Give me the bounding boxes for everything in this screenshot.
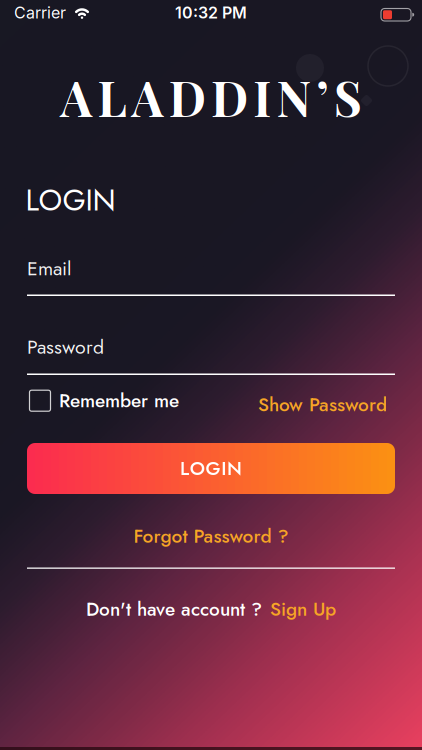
staticText: ’ bbox=[317, 65, 329, 129]
button[interactable]: LOGIN bbox=[27, 443, 395, 494]
staticText: L bbox=[97, 65, 126, 129]
button[interactable]: Remember me bbox=[29, 387, 179, 414]
staticText: Show Password bbox=[258, 391, 387, 418]
staticText: Remember me bbox=[59, 387, 179, 414]
staticText: Carrier bbox=[14, 3, 66, 22]
staticText: Email bbox=[27, 254, 71, 283]
staticText: LOGIN bbox=[25, 178, 115, 222]
staticText: Sign Up bbox=[270, 595, 336, 623]
button[interactable]: Sign Up bbox=[270, 595, 336, 623]
staticText: D bbox=[211, 65, 248, 129]
staticText: I bbox=[253, 65, 271, 129]
staticText: Don't have account ? bbox=[86, 595, 262, 623]
staticText: Password bbox=[27, 333, 104, 361]
button[interactable]: Email bbox=[27, 254, 395, 296]
staticText: A bbox=[60, 65, 92, 129]
staticText: A bbox=[132, 65, 164, 129]
staticText: LOGIN bbox=[180, 455, 242, 482]
button[interactable]: Forgot Password ? bbox=[133, 522, 288, 550]
staticText: D bbox=[169, 65, 206, 129]
staticText: N bbox=[276, 65, 311, 129]
button[interactable]: Show Password bbox=[258, 391, 387, 418]
button[interactable]: Password bbox=[27, 333, 395, 375]
staticText: S bbox=[334, 65, 362, 129]
staticText: 10:32 PM bbox=[175, 3, 247, 22]
staticText: Forgot Password ? bbox=[133, 522, 288, 550]
